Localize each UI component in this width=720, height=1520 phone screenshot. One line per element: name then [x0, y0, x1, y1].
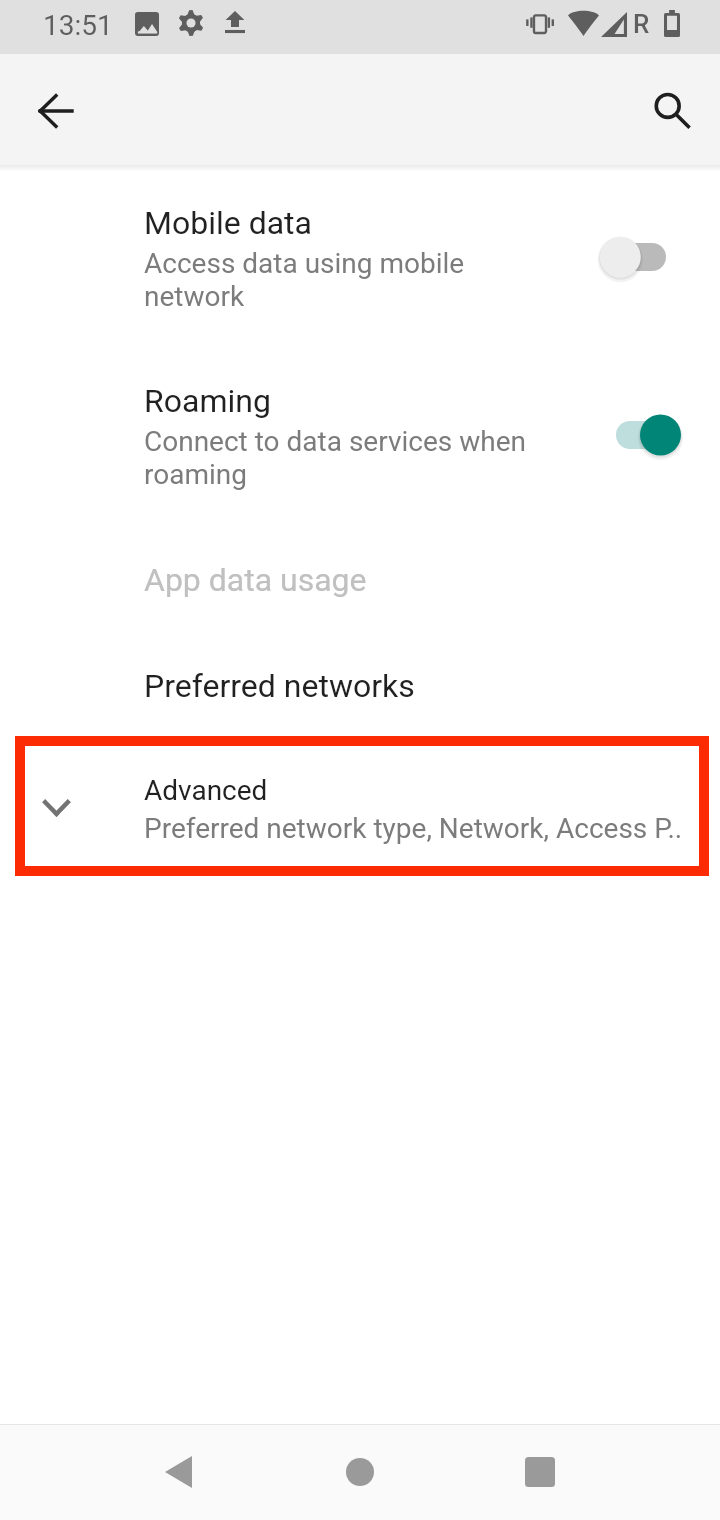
staticText: Access data using mobile network	[144, 247, 544, 313]
button[interactable]: App data usage	[0, 561, 720, 657]
button[interactable]: Back	[133, 1427, 223, 1517]
staticText: Mobile data	[144, 204, 312, 242]
staticText: Preferred networks	[144, 667, 415, 705]
button[interactable]: On	[602, 411, 698, 459]
button[interactable]: Search	[631, 71, 711, 151]
staticText: App data usage	[144, 561, 367, 599]
staticText: Advanced	[144, 774, 268, 807]
staticText: R	[633, 9, 650, 39]
button[interactable]: Off	[602, 233, 698, 281]
staticText: Roaming	[144, 382, 271, 420]
staticText: Connect to data services when roaming	[144, 425, 544, 491]
staticText: 13:51	[43, 9, 113, 42]
button[interactable]: Recent apps	[495, 1427, 585, 1517]
staticText: Preferred network type, Network, Access …	[144, 812, 683, 845]
button[interactable]: Mobile data	[0, 204, 720, 340]
button[interactable]: Home	[315, 1427, 405, 1517]
button[interactable]: Preferred networks	[0, 667, 720, 763]
button[interactable]: Roaming	[0, 382, 720, 518]
button[interactable]: Advanced	[25, 746, 699, 866]
button[interactable]: Navigate up	[16, 71, 96, 151]
